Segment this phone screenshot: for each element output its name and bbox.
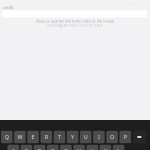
staticText: K [104, 147, 107, 150]
button[interactable]: U [80, 131, 92, 143]
staticText: A [12, 147, 15, 150]
staticText: P [124, 133, 127, 141]
staticText: L [117, 147, 120, 150]
button[interactable]: G [60, 145, 72, 150]
button[interactable]: J [86, 145, 98, 150]
button[interactable]: E [27, 131, 39, 143]
staticText: Link URL [3, 6, 14, 10]
staticText: E [32, 133, 35, 141]
button[interactable]: F [47, 145, 59, 150]
staticText: I [98, 133, 100, 141]
button[interactable]: I [93, 131, 105, 143]
button[interactable]: H [73, 145, 85, 150]
staticText: F [51, 147, 54, 150]
button[interactable]: D [34, 145, 45, 150]
staticText: U [84, 133, 88, 141]
staticText: R [45, 133, 48, 141]
staticText: Y [71, 133, 74, 141]
button[interactable]: A [7, 145, 19, 150]
staticText: Or just drag and drop it here. It's easi… [46, 24, 103, 27]
button[interactable]: Y [67, 131, 78, 143]
button[interactable]: Delete [133, 131, 146, 143]
staticText: H [77, 147, 81, 150]
button[interactable]: P [119, 131, 131, 143]
button[interactable]: K [100, 145, 111, 150]
staticText: G [64, 147, 68, 150]
button[interactable]: R [40, 131, 52, 143]
button[interactable]: T [54, 131, 65, 143]
staticText: D [38, 147, 42, 150]
staticText: Q [5, 133, 9, 141]
staticText: J [92, 147, 93, 150]
button[interactable]: Q [1, 131, 13, 143]
button[interactable]: L [113, 145, 124, 150]
button[interactable]: O [106, 131, 118, 143]
staticText: Paste or type the link to the video or t… [36, 18, 114, 23]
button[interactable]: W [14, 131, 26, 143]
staticText: S [25, 147, 28, 150]
button[interactable]: S [21, 145, 32, 150]
staticText: O [110, 133, 114, 141]
staticText: T [58, 133, 61, 141]
staticText: W [17, 133, 22, 141]
